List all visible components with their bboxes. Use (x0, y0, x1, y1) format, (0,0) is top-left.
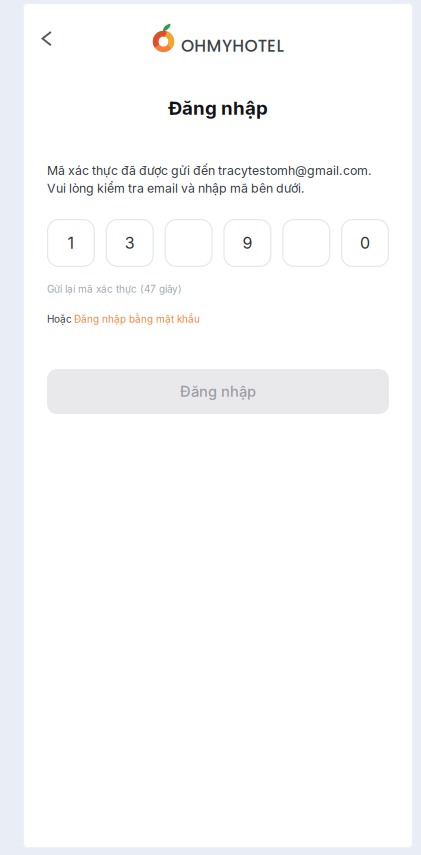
staticText: Hoặc (47, 313, 72, 325)
staticText: 0 (360, 233, 370, 253)
button[interactable]: Back (31, 22, 63, 56)
button[interactable]: Đăng nhập (47, 369, 389, 414)
button[interactable]: Đăng nhập bằng mật khẩu (74, 313, 200, 325)
staticText: 1 (67, 233, 74, 253)
button[interactable]: Empty verification digit (282, 219, 330, 267)
staticText: OHMYHOTEL (181, 34, 283, 57)
staticText: Đăng nhập (168, 97, 268, 119)
staticText: Đăng nhập bằng mật khẩu (74, 313, 200, 325)
button[interactable]: Gửi lại mã xác thực (47 giây) (47, 281, 389, 297)
button[interactable]: Verification digit 9 (223, 219, 271, 267)
staticText: Gửi lại mã xác thực (47 giây) (47, 283, 182, 295)
button[interactable]: Empty verification digit (165, 219, 213, 267)
staticText: Vui lòng kiểm tra email và nhập mã bên d… (47, 181, 305, 196)
staticText: 9 (242, 233, 252, 253)
button[interactable]: Verification digit 0 (341, 219, 389, 267)
staticText: 3 (125, 233, 135, 253)
staticText: Mã xác thực đã được gửi đến tracytestomh… (47, 163, 372, 178)
button[interactable]: Verification digit 3 (106, 219, 154, 267)
button[interactable]: Verification digit 1 (47, 219, 95, 267)
staticText: Đăng nhập (180, 383, 256, 400)
